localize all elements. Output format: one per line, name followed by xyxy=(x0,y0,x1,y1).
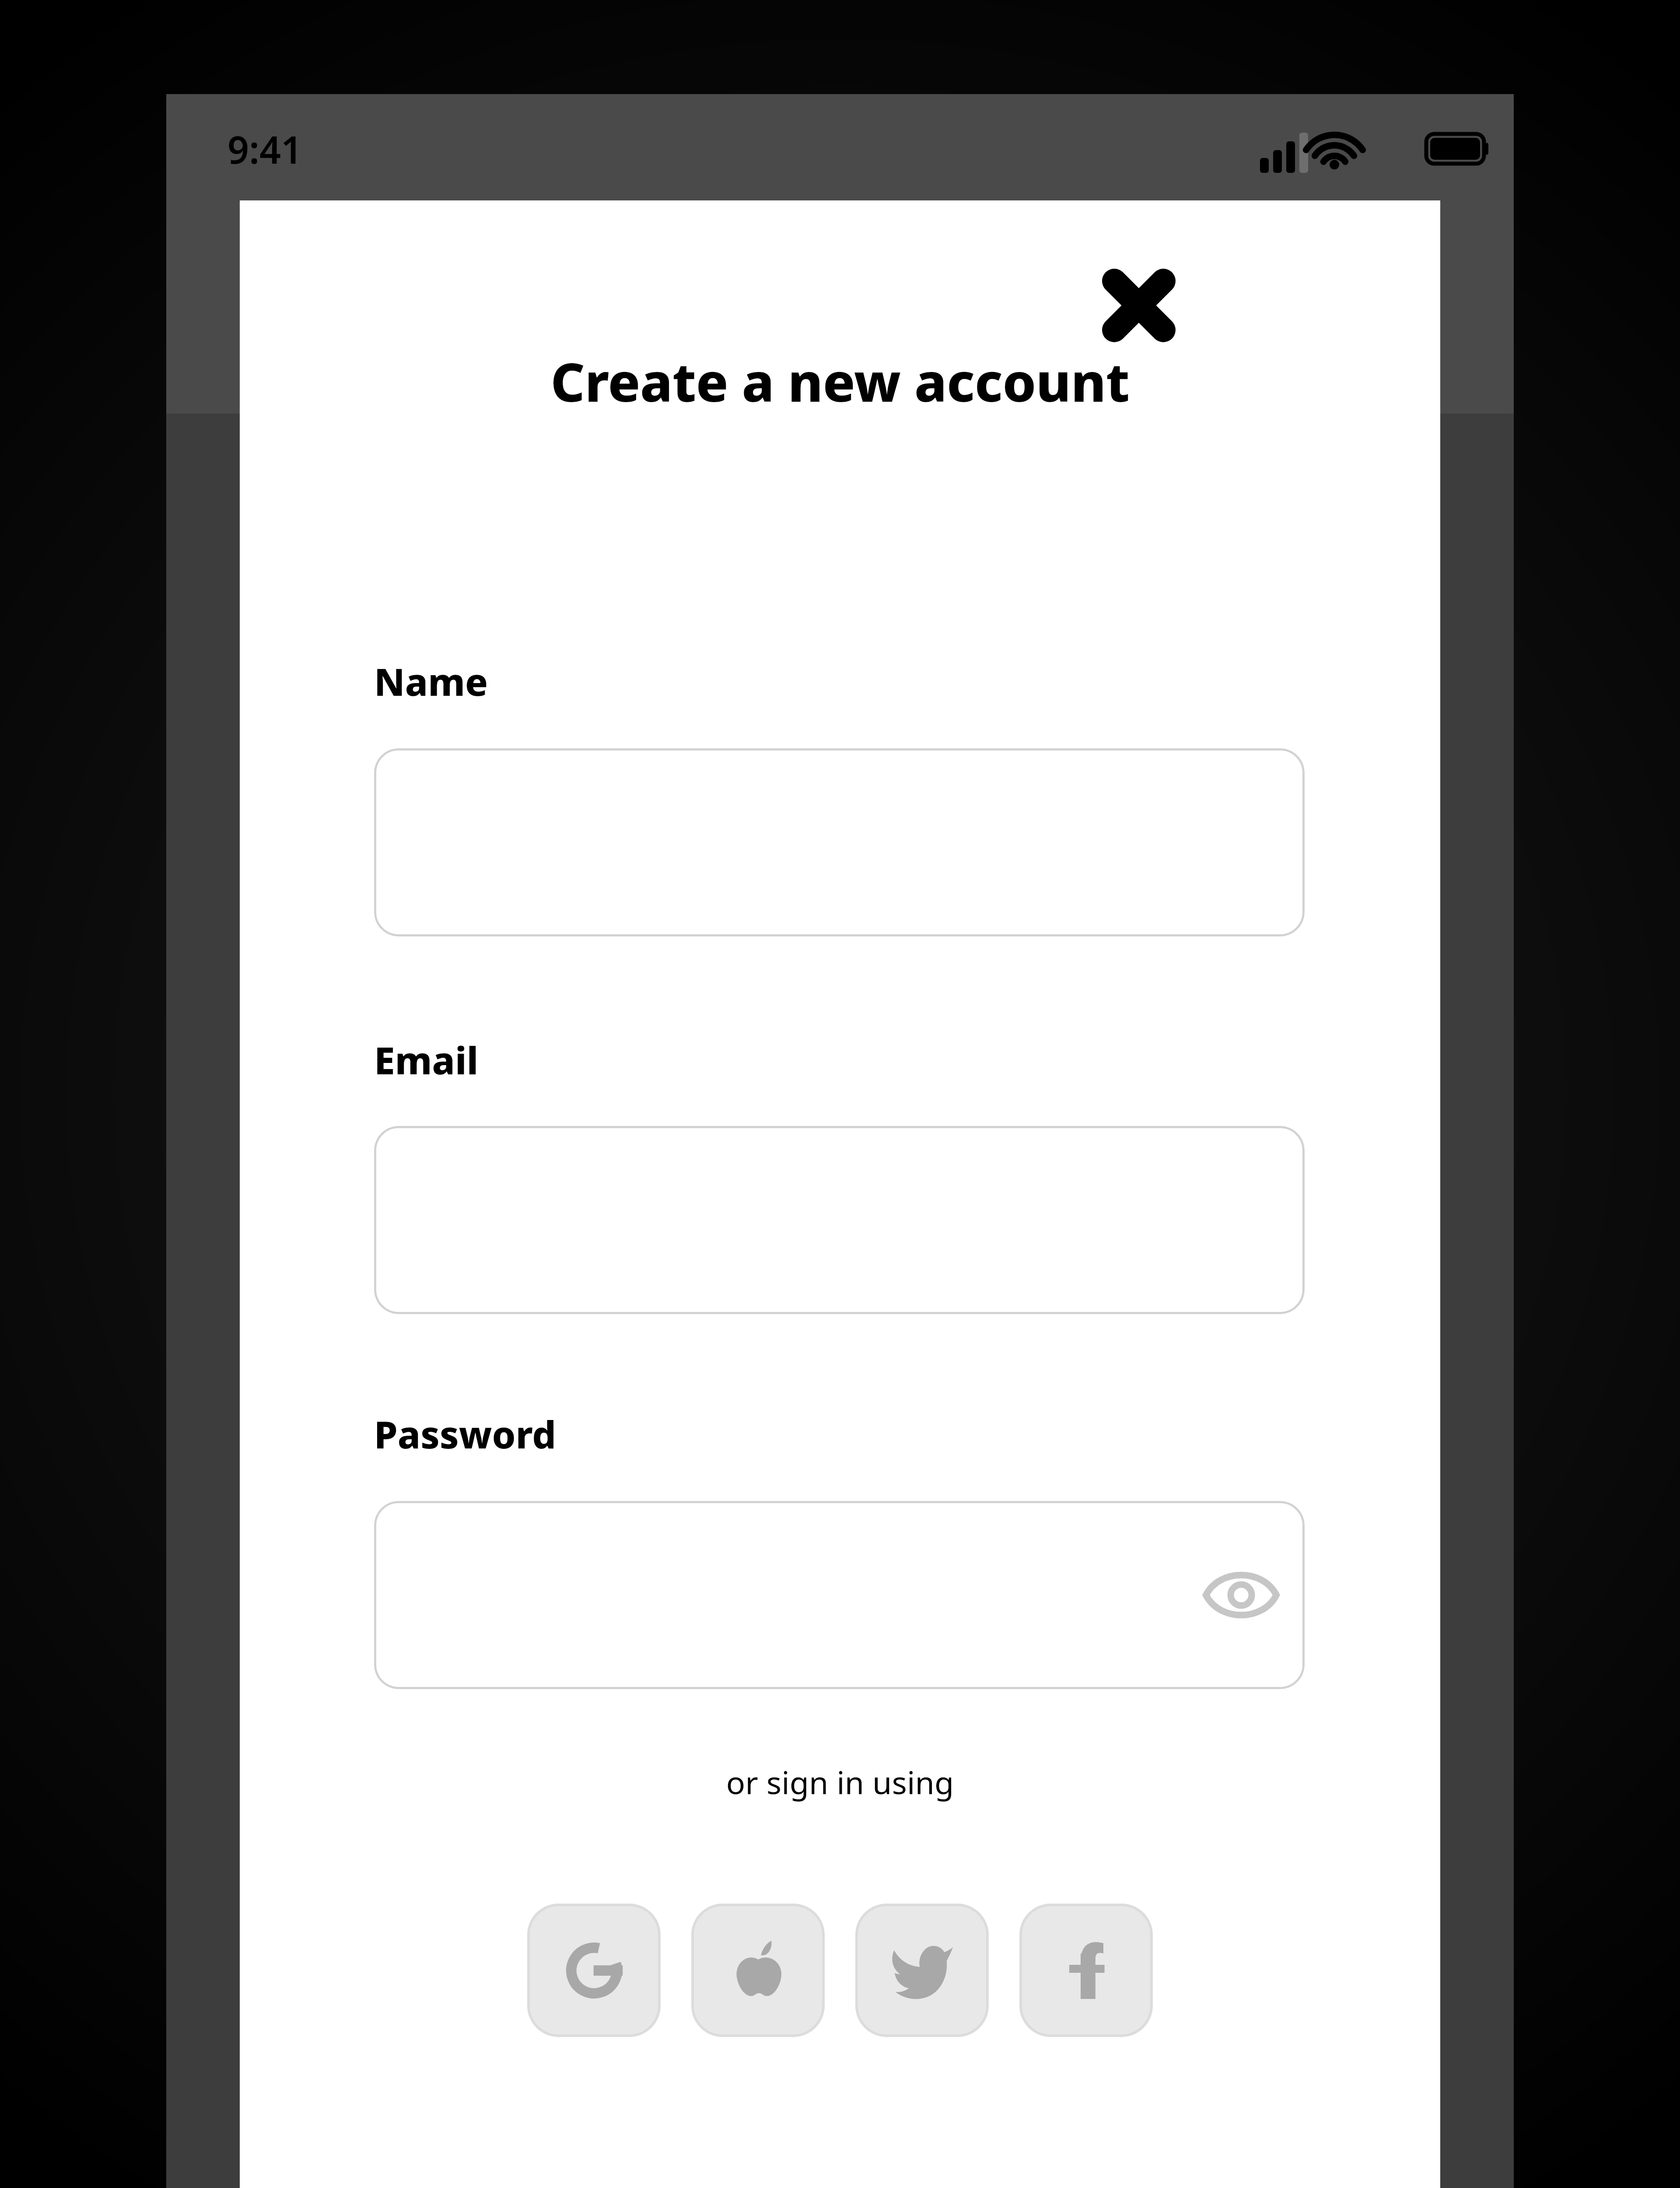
staticText: Email xyxy=(374,1034,479,1085)
staticText: Name xyxy=(374,656,488,707)
button[interactable]: Sign in with Google xyxy=(527,1904,661,2037)
button[interactable]: Sign in with Facebook xyxy=(1019,1904,1153,2037)
button[interactable]: Show password xyxy=(1200,1553,1283,1637)
staticText: Password xyxy=(374,1408,556,1459)
staticText: 9:41 xyxy=(227,123,303,175)
button[interactable]: Sign in with Twitter xyxy=(855,1904,989,2037)
button[interactable] xyxy=(374,748,1305,936)
button[interactable]: Show password xyxy=(374,1501,1305,1689)
button[interactable]: Sign in with Apple xyxy=(691,1904,825,2037)
staticText: Create a new account xyxy=(240,345,1440,417)
button[interactable]: Close xyxy=(1082,249,1196,362)
staticText: or sign in using xyxy=(240,1760,1440,1803)
button[interactable] xyxy=(374,1126,1305,1314)
